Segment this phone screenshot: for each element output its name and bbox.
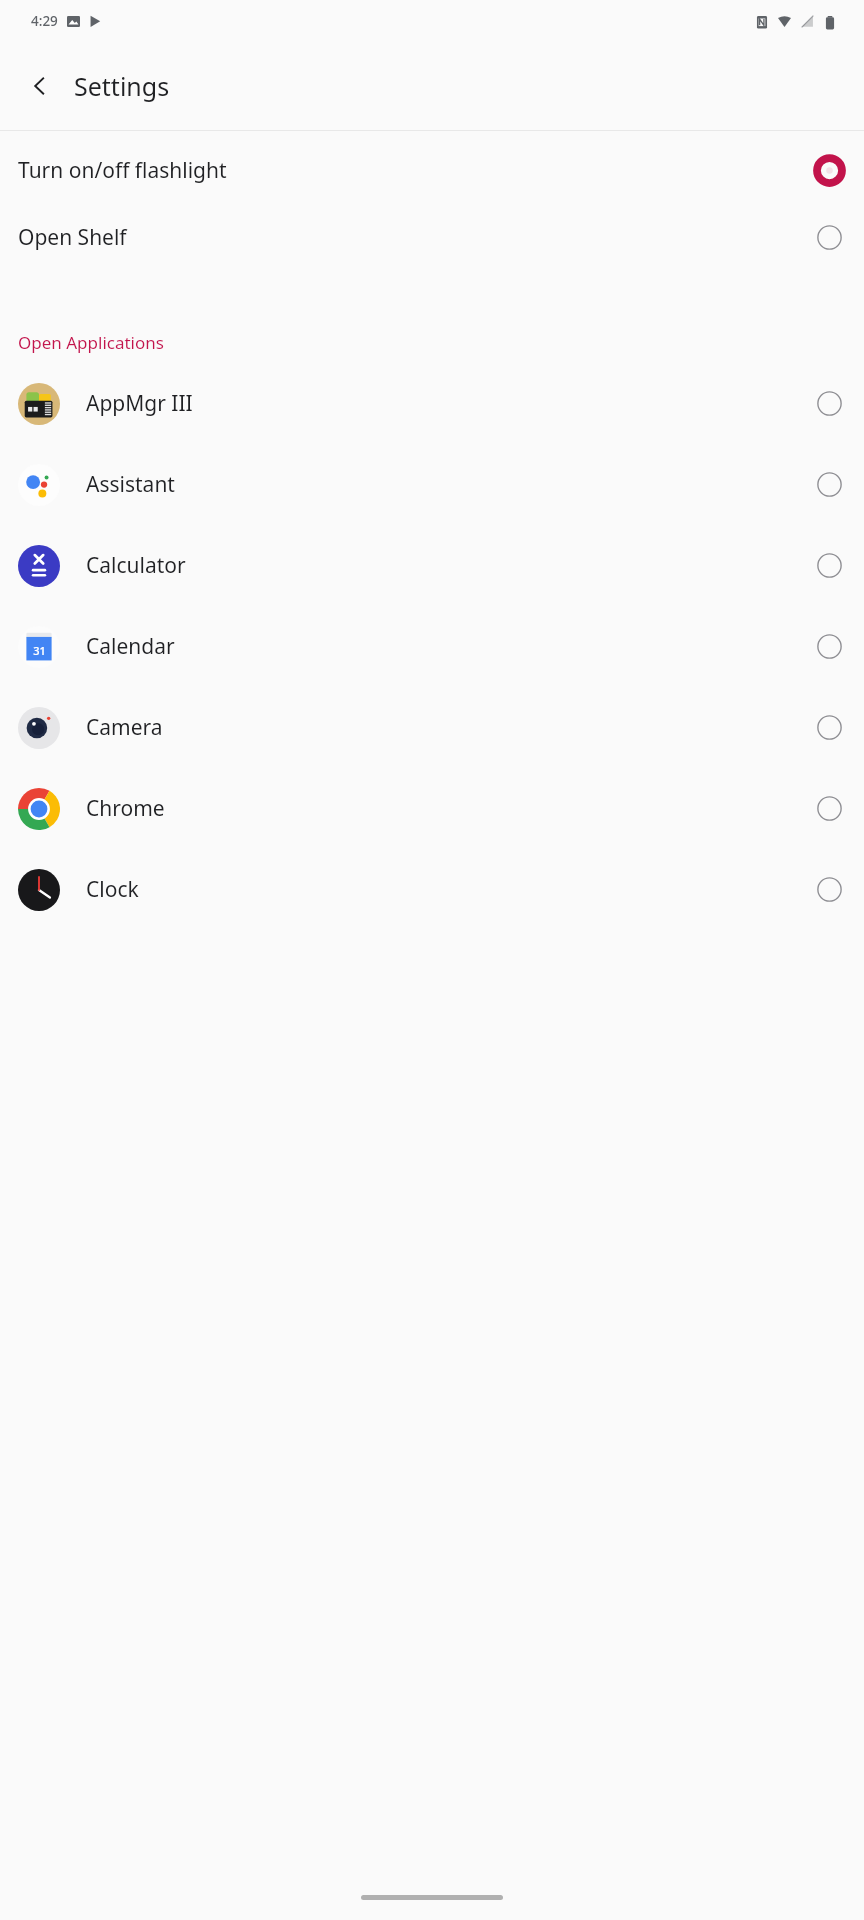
staticText: Turn on/off flashlight <box>18 156 817 185</box>
button[interactable]: Assistant <box>0 444 864 525</box>
staticText: Chrome <box>86 794 817 823</box>
staticText: AppMgr III <box>86 389 817 418</box>
button[interactable]: Camera <box>0 687 864 768</box>
button[interactable]: Back <box>16 62 64 110</box>
staticText: Assistant <box>86 470 817 499</box>
button[interactable]: Chrome <box>0 768 864 849</box>
button[interactable]: Turn on/off flashlight <box>0 137 864 204</box>
staticText: Open Applications <box>18 331 164 354</box>
button[interactable]: Clock <box>0 849 864 930</box>
staticText: Clock <box>86 875 817 904</box>
staticText: 4:29 <box>31 12 58 30</box>
staticText: Calculator <box>86 551 817 580</box>
button[interactable]: AppMgr III <box>0 363 864 444</box>
button[interactable]: Open Shelf <box>0 204 864 271</box>
button[interactable]: Calculator <box>0 525 864 606</box>
staticText: Settings <box>74 69 170 103</box>
staticText: Calendar <box>86 632 817 661</box>
staticText: 31 <box>33 643 46 658</box>
staticText: Camera <box>86 713 817 742</box>
button[interactable]: 31 <box>0 606 864 687</box>
staticText: Open Shelf <box>18 223 817 252</box>
